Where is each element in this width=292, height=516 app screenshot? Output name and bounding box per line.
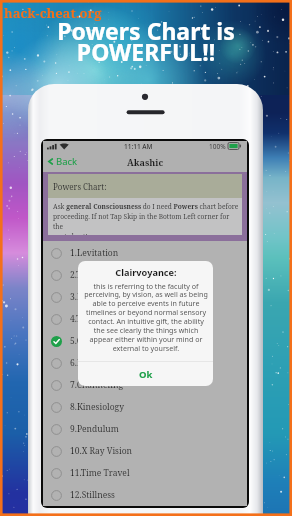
staticText: 12.Stillness (70, 489, 115, 501)
button[interactable]: 2.Telepathy (43, 264, 247, 286)
button[interactable]: 4.Telekinesis (43, 308, 247, 330)
button[interactable]: 1.Levitation (43, 242, 247, 264)
button[interactable]: 5.Clairvoyance (43, 330, 247, 352)
button[interactable]: 6.Remote Viewing (43, 352, 247, 374)
staticText: 6.Remote Viewing (70, 357, 143, 369)
staticText: hack-cheat.org (4, 4, 102, 22)
staticText: 7.Channeling (70, 379, 124, 391)
staticText: 9.Pendulum (70, 423, 119, 435)
staticText: 100% (209, 142, 226, 151)
button[interactable]: 8.Kinesiology (43, 396, 247, 418)
staticText: this is referring to the faculty of perc… (84, 281, 208, 353)
staticText: 4.Telekinesis (70, 313, 121, 325)
button[interactable]: Ok (78, 362, 213, 386)
staticText: Powers Chart: (53, 181, 107, 192)
staticText: 8.Kinesiology (70, 401, 124, 413)
staticText: 11.Time Travel (70, 467, 130, 479)
button[interactable]: 12.Stillness (43, 484, 247, 506)
staticText: Akashic (127, 156, 164, 168)
button[interactable]: 11.Time Travel (43, 462, 247, 484)
staticText: Clairvoyance: (115, 266, 177, 279)
staticText: 10.X Ray Vision (70, 445, 133, 457)
staticText: 1.Levitation (70, 247, 119, 259)
button[interactable]: 3.Healing (43, 286, 247, 308)
staticText: 2.Telepathy (70, 269, 116, 281)
button[interactable]: 10.X Ray Vision (43, 440, 247, 462)
staticText: 11:11 AM (124, 142, 153, 151)
button[interactable]: 9.Pendulum (43, 418, 247, 440)
button[interactable]: Back (46, 151, 78, 172)
staticText: Ok (139, 368, 153, 381)
staticText: Powers Chart is POWERFUL!! (0, 15, 292, 68)
staticText: 3.Healing (70, 291, 109, 303)
staticText: 5.Clairvoyance (70, 335, 130, 347)
button[interactable]: 7.Channeling (43, 374, 247, 396)
staticText: Ask general Consciousness do I need Powe… (53, 202, 239, 235)
staticText: Back (56, 155, 78, 168)
